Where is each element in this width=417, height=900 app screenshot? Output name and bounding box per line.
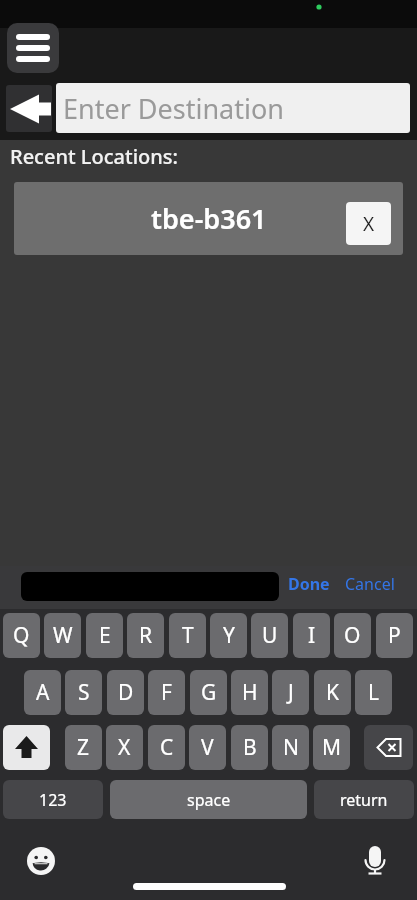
button[interactable] <box>3 725 50 770</box>
button[interactable]: Done <box>288 573 330 595</box>
button[interactable]: X <box>106 725 143 770</box>
button[interactable]: H <box>231 670 268 715</box>
staticText: Y <box>223 621 235 650</box>
button[interactable]: I <box>293 613 330 658</box>
button[interactable]: G <box>190 670 227 715</box>
button[interactable]: J <box>272 670 309 715</box>
staticText: J <box>288 678 294 707</box>
staticText: E <box>99 621 111 650</box>
staticText: N <box>283 733 299 762</box>
button[interactable]: E <box>86 613 123 658</box>
button[interactable]: B <box>231 725 268 770</box>
staticText: H <box>242 678 258 707</box>
staticText: Z <box>77 733 90 762</box>
staticText: F <box>161 678 172 707</box>
staticText: D <box>118 678 134 707</box>
button[interactable]: V <box>189 725 226 770</box>
button[interactable]: C <box>148 725 185 770</box>
button[interactable]: D <box>107 670 144 715</box>
button[interactable]: S <box>65 670 102 715</box>
staticText: Done <box>288 573 330 595</box>
button[interactable] <box>26 846 56 876</box>
button[interactable] <box>6 85 52 132</box>
button[interactable]: A <box>24 670 61 715</box>
button[interactable]: W <box>44 613 81 658</box>
button[interactable]: Z <box>65 725 102 770</box>
staticText: tbe-b361 <box>151 200 267 237</box>
staticText: Q <box>13 621 30 650</box>
staticText: M <box>322 733 342 762</box>
staticText: Cancel <box>345 573 395 595</box>
staticText: O <box>344 621 361 650</box>
staticText: return <box>340 789 388 811</box>
staticText: I <box>308 621 316 650</box>
button[interactable] <box>7 23 59 73</box>
staticText: R <box>139 621 153 650</box>
button[interactable]: Q <box>3 613 40 658</box>
staticText: A <box>36 678 50 707</box>
staticText: P <box>388 621 401 650</box>
button[interactable]: F <box>148 670 185 715</box>
button[interactable]: R <box>127 613 164 658</box>
staticText: 123 <box>39 789 67 811</box>
button[interactable]: T <box>169 613 206 658</box>
staticText: B <box>243 733 257 762</box>
staticText: T <box>182 621 194 650</box>
button[interactable]: K <box>314 670 351 715</box>
button[interactable]: P <box>376 613 413 658</box>
button[interactable]: N <box>272 725 309 770</box>
staticText: C <box>160 733 174 762</box>
button[interactable]: tbe-b361 <box>14 182 403 255</box>
button[interactable] <box>21 572 279 601</box>
staticText: S <box>78 678 90 707</box>
staticText: X <box>363 211 375 237</box>
staticText: X <box>118 733 131 762</box>
button[interactable]: return <box>314 780 414 819</box>
staticText: U <box>262 621 278 650</box>
button[interactable]: Enter Destination <box>56 83 410 133</box>
button[interactable]: M <box>313 725 350 770</box>
button[interactable] <box>364 725 413 770</box>
staticText: W <box>53 621 73 650</box>
button[interactable]: 123 <box>3 780 103 819</box>
staticText: space <box>187 789 231 811</box>
button[interactable]: space <box>110 780 307 819</box>
staticText: Enter Destination <box>63 90 284 127</box>
staticText: G <box>201 678 217 707</box>
staticText: L <box>368 678 380 707</box>
button[interactable]: U <box>251 613 288 658</box>
button[interactable]: Y <box>210 613 247 658</box>
button[interactable]: Cancel <box>345 573 395 595</box>
staticText: Recent Locations: <box>10 143 178 170</box>
staticText: V <box>201 733 214 762</box>
button[interactable]: O <box>334 613 371 658</box>
button[interactable]: L <box>355 670 392 715</box>
button[interactable]: X <box>346 202 391 245</box>
staticText: K <box>326 678 339 707</box>
button[interactable] <box>362 841 388 879</box>
